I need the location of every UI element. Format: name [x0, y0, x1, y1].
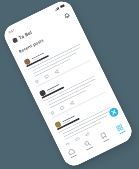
- button[interactable]: Profile: [109, 117, 134, 145]
- button[interactable]: Search: [76, 133, 102, 161]
- button[interactable]: Saved: [92, 125, 118, 153]
- staticText: Recent posts: [18, 38, 45, 55]
- staticText: 9:41: [8, 28, 16, 35]
- button[interactable]: Home: [60, 141, 86, 169]
- button[interactable]: Create post: [108, 106, 120, 118]
- staticText: Ta Bel: [18, 29, 33, 41]
- button[interactable]: Notifications: [60, 9, 72, 21]
